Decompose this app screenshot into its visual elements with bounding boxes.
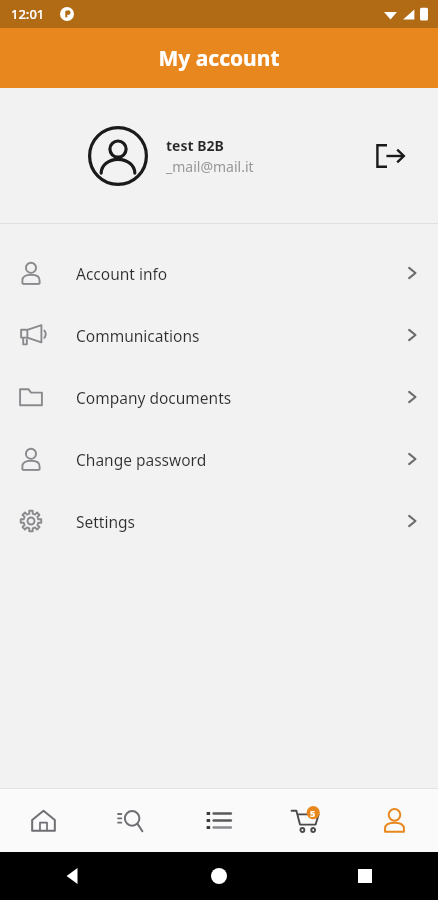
button[interactable]: Home: [0, 789, 87, 852]
button[interactable]: Account info: [0, 242, 438, 304]
button[interactable]: Log out: [366, 132, 414, 180]
button[interactable]: Change password: [0, 428, 438, 490]
staticText: Account info: [76, 263, 404, 284]
button[interactable]: Settings: [0, 490, 438, 552]
button[interactable]: Recent apps: [343, 854, 387, 898]
staticText: Settings: [76, 511, 404, 532]
staticText: My account: [158, 44, 280, 73]
button[interactable]: Orders: [174, 789, 262, 852]
staticText: 12:01: [11, 5, 45, 23]
button[interactable]: Account: [350, 789, 438, 852]
button[interactable]: Company documents: [0, 366, 438, 428]
button[interactable]: Home: [197, 854, 241, 898]
staticText: 5: [310, 807, 316, 819]
staticText: _mail@mail.it: [166, 157, 254, 176]
staticText: Change password: [76, 449, 404, 470]
staticText: Company documents: [76, 387, 404, 408]
button[interactable]: Back: [51, 854, 95, 898]
button[interactable]: Communications: [0, 304, 438, 366]
staticText: test B2B: [166, 136, 224, 155]
button[interactable]: Search: [87, 789, 174, 852]
button[interactable]: Cart, 5 items: [262, 789, 350, 852]
staticText: Communications: [76, 325, 404, 346]
